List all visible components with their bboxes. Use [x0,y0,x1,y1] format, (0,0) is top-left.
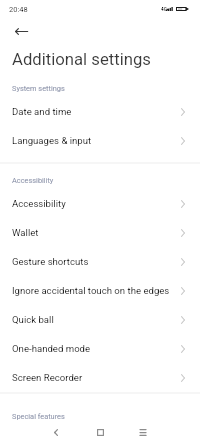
button[interactable]: Back [42,420,70,444]
staticText: Gesture shortcuts [12,256,181,267]
button[interactable]: Ignore accidental touch on the edges [0,276,200,305]
button[interactable]: Gesture shortcuts [0,247,200,276]
button[interactable]: Accessibility [0,189,200,218]
staticText: Date and time [12,106,181,117]
button[interactable]: Home [86,420,114,444]
button[interactable]: Recent apps [129,420,157,444]
button[interactable]: One-handed mode [0,334,200,363]
button[interactable]: Screen Recorder [0,363,200,392]
staticText: Wallet [12,227,181,238]
button[interactable]: Wallet [0,218,200,247]
button[interactable]: Languages & input [0,126,200,155]
staticText: Accessibility [12,176,54,185]
staticText: 4G+ [161,7,170,12]
staticText: Special features [12,412,65,421]
staticText: Languages & input [12,135,181,146]
staticText: 20:48 [9,5,28,14]
staticText: Ignore accidental touch on the edges [12,285,181,296]
button[interactable]: Quick ball [0,305,200,334]
staticText: Quick ball [12,314,181,325]
staticText: Additional settings [12,50,151,70]
staticText: One-handed mode [12,343,181,354]
button[interactable]: Back [7,17,35,45]
staticText: Accessibility [12,198,181,209]
staticText: System settings [12,84,65,93]
button[interactable]: Date and time [0,97,200,126]
staticText: Screen Recorder [12,372,181,383]
